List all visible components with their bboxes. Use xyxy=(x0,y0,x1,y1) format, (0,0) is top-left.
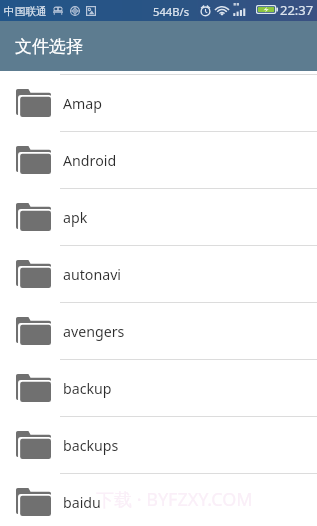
staticText: 文件选择 xyxy=(15,36,83,57)
staticText: backups xyxy=(63,436,119,455)
staticText: Amap xyxy=(63,94,103,113)
button[interactable]: apk xyxy=(0,189,317,246)
button[interactable]: backup xyxy=(0,360,317,417)
staticText: 544B/s xyxy=(153,4,189,19)
staticText: backup xyxy=(63,379,112,398)
staticText: Android xyxy=(63,151,117,170)
button[interactable]: backups xyxy=(0,417,317,474)
button[interactable]: avengers xyxy=(0,303,317,360)
staticText: baidu xyxy=(63,493,101,512)
staticText: 中国联通 xyxy=(4,5,47,18)
staticText: apk xyxy=(63,208,88,227)
button[interactable]: Amap xyxy=(0,75,317,132)
button[interactable]: Android xyxy=(0,132,317,189)
button[interactable]: autonavi xyxy=(0,246,317,303)
staticText: autonavi xyxy=(63,265,122,284)
button[interactable]: baidu xyxy=(0,474,317,526)
staticText: 22:37 xyxy=(280,1,314,19)
staticText: 下载 · BYFZXY.COM xyxy=(96,487,253,512)
staticText: avengers xyxy=(63,322,125,341)
